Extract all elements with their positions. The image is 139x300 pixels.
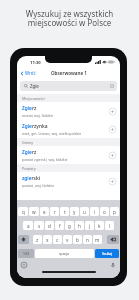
button[interactable]: Backspace — [107, 235, 119, 244]
button[interactable]: Dyktowanie — [109, 261, 117, 269]
button[interactable]: Zgierz — [17, 102, 120, 120]
staticText: spacja — [59, 251, 70, 256]
staticText: i — [94, 209, 96, 215]
button[interactable]: Emoji — [20, 261, 28, 269]
staticText: n — [86, 237, 89, 243]
button[interactable]: h — [75, 221, 84, 230]
staticText: wieś, gm. Lisewo, woj. wielkopolskie — [22, 131, 82, 136]
button[interactable]: l — [105, 221, 114, 230]
staticText: q — [22, 209, 25, 215]
staticText: powiat zgierski, woj. łódzkie — [22, 157, 68, 162]
staticText: u — [83, 209, 86, 215]
button[interactable]: f — [55, 221, 64, 230]
staticText: Wyszukuj ze wszystkich miejscowości w Po… — [0, 8, 139, 29]
button[interactable]: zgierski — [17, 172, 120, 190]
button[interactable]: Zgierz — [17, 146, 120, 164]
button[interactable]: b — [73, 235, 82, 244]
button[interactable]: Shift — [18, 235, 29, 244]
button[interactable]: s — [34, 221, 44, 230]
staticText: Gminy — [22, 140, 34, 145]
button[interactable]: r — [50, 207, 59, 216]
staticText: z — [36, 237, 39, 243]
button[interactable]: y — [70, 207, 79, 216]
staticText: h — [78, 223, 81, 229]
button[interactable]: z — [33, 235, 42, 244]
staticText: j — [89, 223, 91, 229]
staticText: 11:30 — [30, 60, 41, 66]
button[interactable]: Wróć — [20, 70, 36, 76]
staticText: 123 — [23, 251, 29, 256]
staticText: Miejscowości — [22, 96, 45, 101]
staticText: Powiaty — [22, 166, 36, 171]
staticText: r — [54, 209, 56, 215]
button[interactable]: w — [29, 207, 39, 216]
staticText: p — [113, 209, 116, 215]
button[interactable]: q — [18, 207, 28, 216]
staticText: w — [32, 209, 36, 215]
button[interactable]: Zgierzynka — [17, 120, 120, 138]
button[interactable]: p — [110, 207, 119, 216]
staticText: e — [43, 209, 46, 215]
staticText: Zgie — [30, 83, 39, 89]
staticText: v — [66, 237, 69, 243]
button[interactable]: t — [60, 207, 69, 216]
button[interactable]: v — [63, 235, 72, 244]
staticText: o — [103, 209, 106, 215]
staticText: miasto woj. łódzkie — [22, 113, 54, 118]
button[interactable]: Dodaj do obserwowanych — [109, 152, 116, 159]
staticText: y — [73, 209, 76, 215]
staticText: l — [109, 223, 111, 229]
button[interactable]: o — [100, 207, 109, 216]
button[interactable]: a — [23, 221, 33, 230]
button[interactable]: c — [53, 235, 62, 244]
staticText: d — [48, 223, 51, 229]
staticText: Zgierzynka — [22, 123, 48, 130]
staticText: Zgierz — [22, 105, 37, 112]
button[interactable]: k — [95, 221, 104, 230]
button[interactable]: spacja — [35, 249, 94, 258]
button[interactable]: d — [45, 221, 54, 230]
staticText: s — [38, 223, 41, 229]
staticText: Wróć — [25, 70, 36, 76]
button[interactable]: i — [90, 207, 99, 216]
button[interactable]: x — [43, 235, 52, 244]
staticText: Zgierz — [22, 149, 37, 156]
staticText: b — [76, 237, 79, 243]
button[interactable]: u — [80, 207, 89, 216]
button[interactable]: Szukaj — [95, 249, 119, 258]
staticText: f — [59, 223, 61, 229]
staticText: Szukaj — [102, 251, 113, 256]
button[interactable]: Dodaj do obserwowanych — [109, 126, 116, 133]
staticText: m — [95, 237, 100, 243]
button[interactable]: e — [40, 207, 49, 216]
button[interactable]: 123 — [18, 249, 34, 258]
staticText: a — [27, 223, 30, 229]
button[interactable]: g — [65, 221, 74, 230]
button[interactable]: n — [83, 235, 92, 244]
staticText: c — [56, 237, 59, 243]
staticText: g — [68, 223, 71, 229]
button[interactable]: j — [85, 221, 94, 230]
button[interactable]: m — [93, 235, 102, 244]
staticText: powiat, woj. łódzkie — [22, 183, 55, 188]
button[interactable]: Dodaj do obserwowanych — [109, 178, 116, 185]
staticText: t — [64, 209, 66, 215]
button[interactable]: Zgie — [20, 81, 117, 91]
button[interactable]: Dodaj do obserwowanych — [109, 108, 116, 115]
staticText: k — [98, 223, 101, 229]
staticText: Obserwowane 1 — [51, 70, 87, 76]
staticText: zgierski — [22, 175, 41, 182]
staticText: x — [46, 237, 49, 243]
